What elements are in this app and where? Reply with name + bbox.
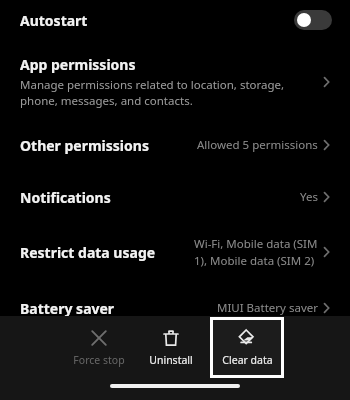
staticText: Notifications <box>20 188 111 207</box>
staticText: Manage permissions related to location, … <box>20 77 285 108</box>
button[interactable]: Autostart toggle <box>294 10 332 30</box>
button[interactable]: Other permissions <box>0 128 350 162</box>
button[interactable]: Autostart <box>0 0 350 40</box>
button[interactable]: Battery saver <box>0 292 350 324</box>
staticText: Wi-Fi, Mobile data (SIM 1), Mobile data … <box>194 236 318 268</box>
staticText: Clear data <box>222 353 273 367</box>
button[interactable]: Notifications <box>0 180 350 214</box>
staticText: Allowed 5 permissions <box>197 137 318 153</box>
staticText: Uninstall <box>149 353 193 367</box>
staticText: Restrict data usage <box>20 243 156 262</box>
staticText: MIUI Battery saver <box>217 300 318 316</box>
staticText: Other permissions <box>20 136 149 155</box>
staticText: Battery saver <box>20 299 115 318</box>
staticText: Yes <box>300 189 318 205</box>
staticText: Force stop <box>73 353 125 367</box>
staticText: App permissions <box>20 55 136 74</box>
button[interactable]: Clear data <box>213 320 281 375</box>
button[interactable]: App permissions <box>0 53 350 114</box>
button[interactable]: Uninstall <box>135 324 207 371</box>
button[interactable]: Restrict data usage <box>0 230 350 274</box>
button[interactable]: Force stop <box>63 324 135 371</box>
staticText: Autostart <box>20 11 88 30</box>
